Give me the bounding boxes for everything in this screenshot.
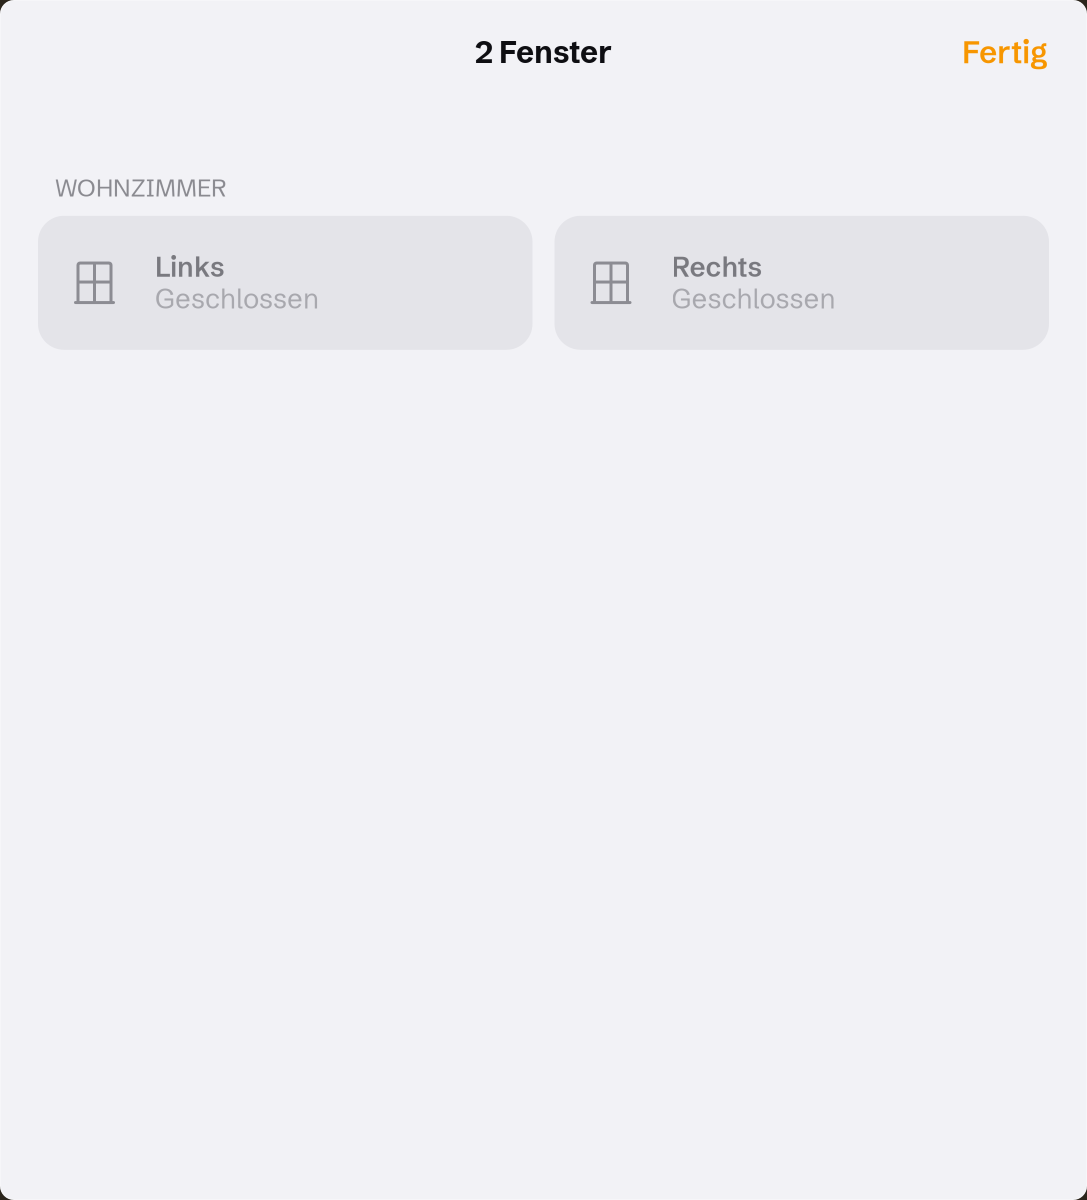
button[interactable]: Links [38, 216, 532, 350]
staticText: Geschlossen [155, 282, 319, 316]
staticText: 2 Fenster [475, 33, 612, 71]
staticText: Geschlossen [671, 282, 835, 316]
button[interactable]: Fertig [946, 21, 1064, 83]
staticText: Links [155, 250, 225, 284]
staticText: Rechts [671, 250, 762, 284]
button[interactable]: Rechts [554, 216, 1049, 350]
staticText: WOHNZIMMER [55, 173, 226, 203]
staticText: Fertig [962, 33, 1048, 71]
